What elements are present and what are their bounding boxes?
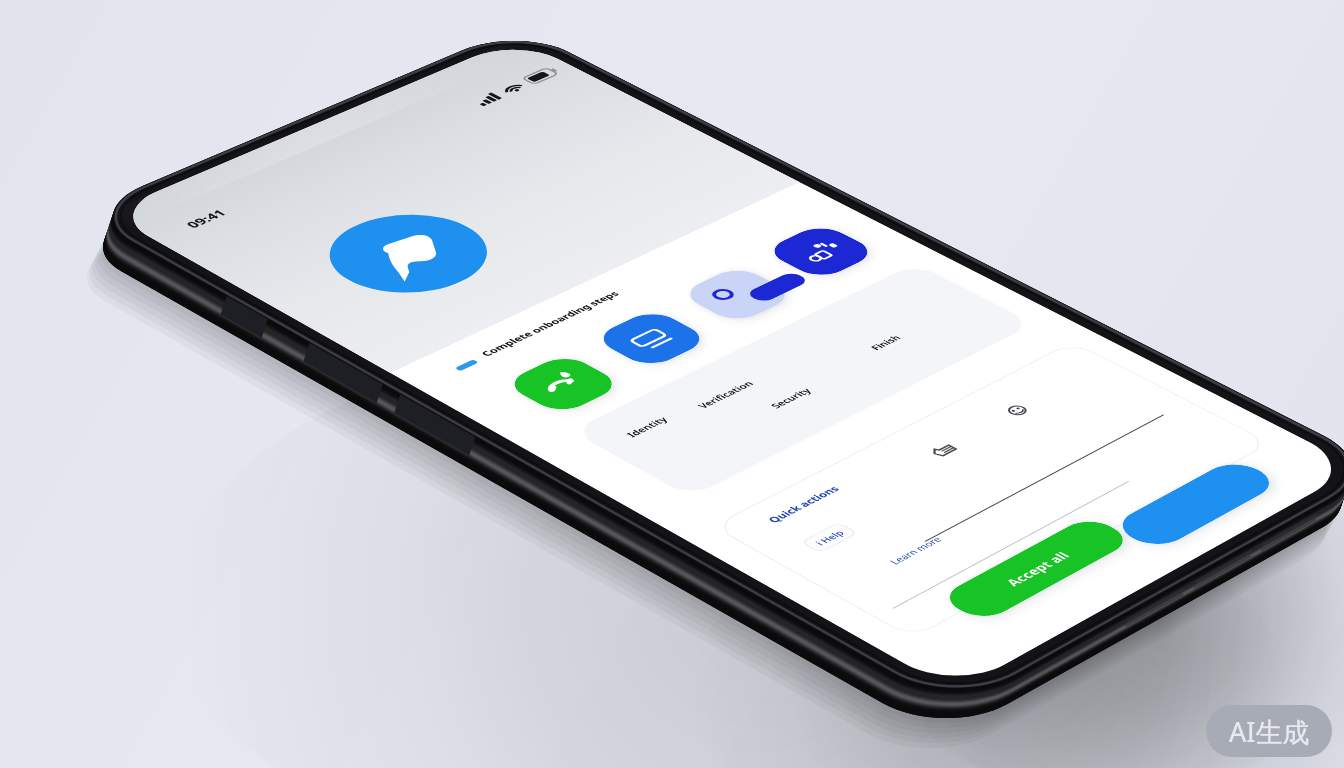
button[interactable]: Profile [301, 357, 360, 416]
button[interactable]: Toggle [216, 360, 275, 419]
button[interactable]: Toggle on [250, 392, 296, 411]
button[interactable]: App logo [62, 134, 172, 244]
staticText: Complete onboarding steps [62, 323, 186, 335]
staticText: AI生成 [1229, 713, 1310, 750]
